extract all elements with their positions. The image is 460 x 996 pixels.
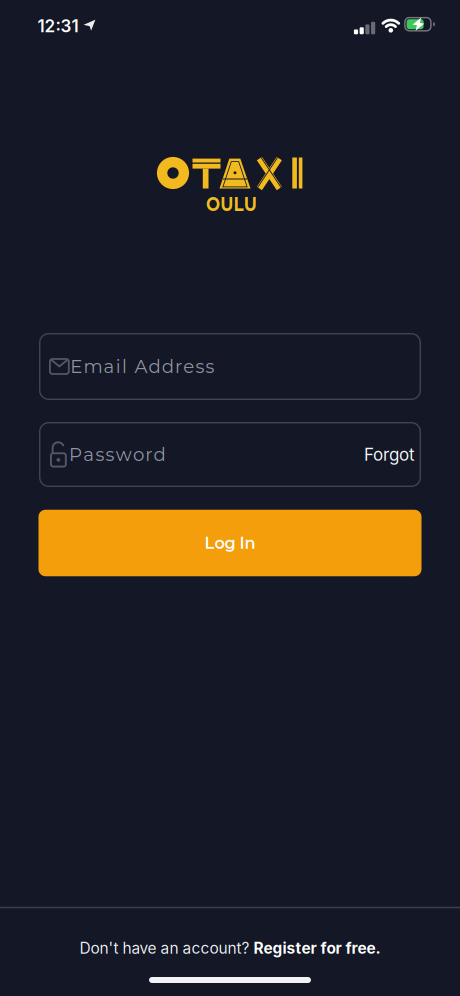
staticText: s <box>195 355 204 377</box>
staticText: a <box>83 443 94 465</box>
staticText: e <box>183 355 194 377</box>
staticText: d <box>153 443 165 465</box>
staticText: d <box>149 355 161 377</box>
staticText: s <box>106 443 115 465</box>
staticText: i <box>116 355 121 377</box>
staticText: d <box>162 355 174 377</box>
staticText: Log In <box>204 533 255 553</box>
staticText: A <box>134 355 147 377</box>
staticText: Forgot <box>364 444 415 465</box>
staticText: l <box>122 355 127 377</box>
button[interactable]: Register for free. <box>253 939 380 957</box>
staticText: a <box>104 355 115 377</box>
staticText: m <box>83 355 102 377</box>
staticText: OULU <box>201 192 262 216</box>
button[interactable]: Log In <box>38 510 421 576</box>
staticText: Register for free. <box>253 939 380 957</box>
button[interactable]: E <box>39 333 421 400</box>
staticText: r <box>175 355 182 377</box>
staticText: P <box>69 443 82 465</box>
staticText: o <box>133 443 144 465</box>
staticText: w <box>116 443 132 465</box>
staticText: s <box>95 443 104 465</box>
button[interactable]: P <box>39 422 421 487</box>
staticText: Don't have an account? <box>79 939 253 957</box>
staticText: E <box>70 355 82 377</box>
staticText: 12:31 <box>37 16 78 36</box>
button[interactable]: Forgot <box>358 434 421 475</box>
staticText: r <box>145 443 152 465</box>
staticText: s <box>206 355 215 377</box>
